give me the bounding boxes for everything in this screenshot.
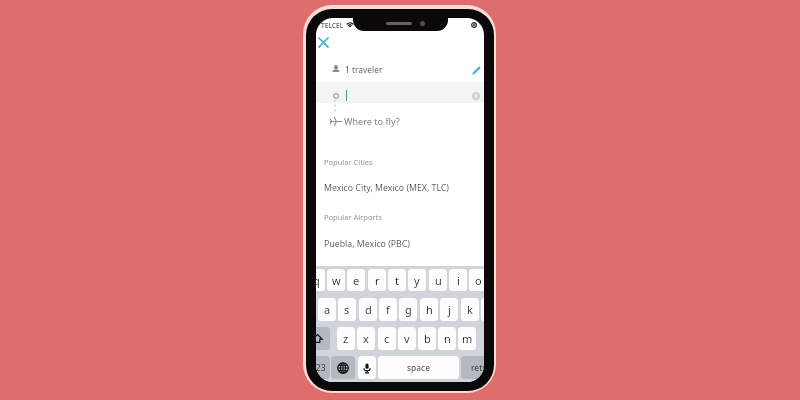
button[interactable]: Voice input [358, 356, 376, 379]
button[interactable]: 1 traveler [316, 58, 484, 80]
staticText: g [405, 302, 412, 317]
staticText: Mexico City, Mexico (MEX, TLC) [324, 182, 449, 194]
button[interactable]: g [399, 298, 417, 321]
button[interactable]: Clear text [468, 88, 484, 104]
button[interactable]: Shift [316, 327, 330, 350]
button[interactable]: c [378, 327, 396, 350]
button[interactable]: h [420, 298, 438, 321]
button[interactable]: Close [316, 32, 334, 53]
staticText: f [386, 302, 390, 317]
button[interactable]: l [481, 298, 484, 321]
staticText: n [444, 331, 451, 346]
staticText: Puebla, Mexico (PBC) [324, 238, 410, 250]
staticText: Where to fly? [344, 115, 400, 127]
button[interactable]: 123 [316, 356, 330, 379]
staticText: u [435, 273, 442, 288]
button[interactable]: v [398, 327, 416, 350]
button[interactable]: j [440, 298, 458, 321]
staticText: d [365, 302, 372, 317]
button[interactable]: Edit travelers [467, 61, 484, 79]
button[interactable]: f [379, 298, 397, 321]
button[interactable]: m [458, 327, 476, 350]
staticText: o [475, 273, 482, 288]
button[interactable]: r [368, 269, 386, 291]
button[interactable]: y [408, 269, 426, 291]
staticText: a [324, 302, 331, 317]
button[interactable]: z [337, 327, 355, 350]
staticText: j [448, 302, 451, 317]
staticText: m [462, 331, 473, 346]
staticText: w [332, 273, 341, 288]
staticText: s [344, 302, 350, 317]
staticText: e [353, 273, 360, 288]
staticText: 1 traveler [345, 64, 383, 75]
button[interactable]: return [461, 356, 484, 379]
button[interactable]: w [327, 269, 345, 291]
staticText: z [343, 331, 349, 346]
staticText: c [384, 331, 390, 346]
button[interactable]: space [378, 356, 459, 379]
staticText: TELCEL [321, 21, 344, 30]
button[interactable]: n [438, 327, 456, 350]
button[interactable]: o [469, 269, 484, 291]
staticText: x [363, 331, 369, 346]
staticText: q [316, 273, 320, 288]
staticText: space [407, 362, 430, 374]
button[interactable]: Puebla, Mexico (PBC) [316, 234, 484, 254]
button[interactable]: a [318, 298, 336, 321]
button[interactable]: Clear text [316, 82, 484, 103]
button[interactable]: Where to fly? [316, 111, 484, 131]
staticText: Popular Airports [324, 212, 382, 222]
button[interactable]: u [429, 269, 447, 291]
staticText: 123 [316, 362, 326, 374]
staticText: v [404, 331, 410, 346]
button[interactable]: t [388, 269, 406, 291]
staticText: return [471, 362, 484, 374]
staticText: Popular Cities [324, 157, 373, 167]
button[interactable]: b [418, 327, 436, 350]
button[interactable]: q [316, 269, 325, 291]
button[interactable]: e [347, 269, 365, 291]
staticText: k [467, 302, 473, 317]
staticText: h [426, 302, 433, 317]
staticText: r [375, 273, 380, 288]
button[interactable]: Mexico City, Mexico (MEX, TLC) [316, 178, 484, 198]
button[interactable]: d [359, 298, 377, 321]
button[interactable]: i [449, 269, 467, 291]
staticText: b [424, 331, 431, 346]
staticText: y [414, 273, 420, 288]
button[interactable]: k [461, 298, 479, 321]
button[interactable]: s [338, 298, 356, 321]
button[interactable]: x [357, 327, 375, 350]
button[interactable]: Change keyboard language [331, 356, 355, 379]
staticText: i [457, 273, 460, 288]
staticText: t [395, 273, 399, 288]
